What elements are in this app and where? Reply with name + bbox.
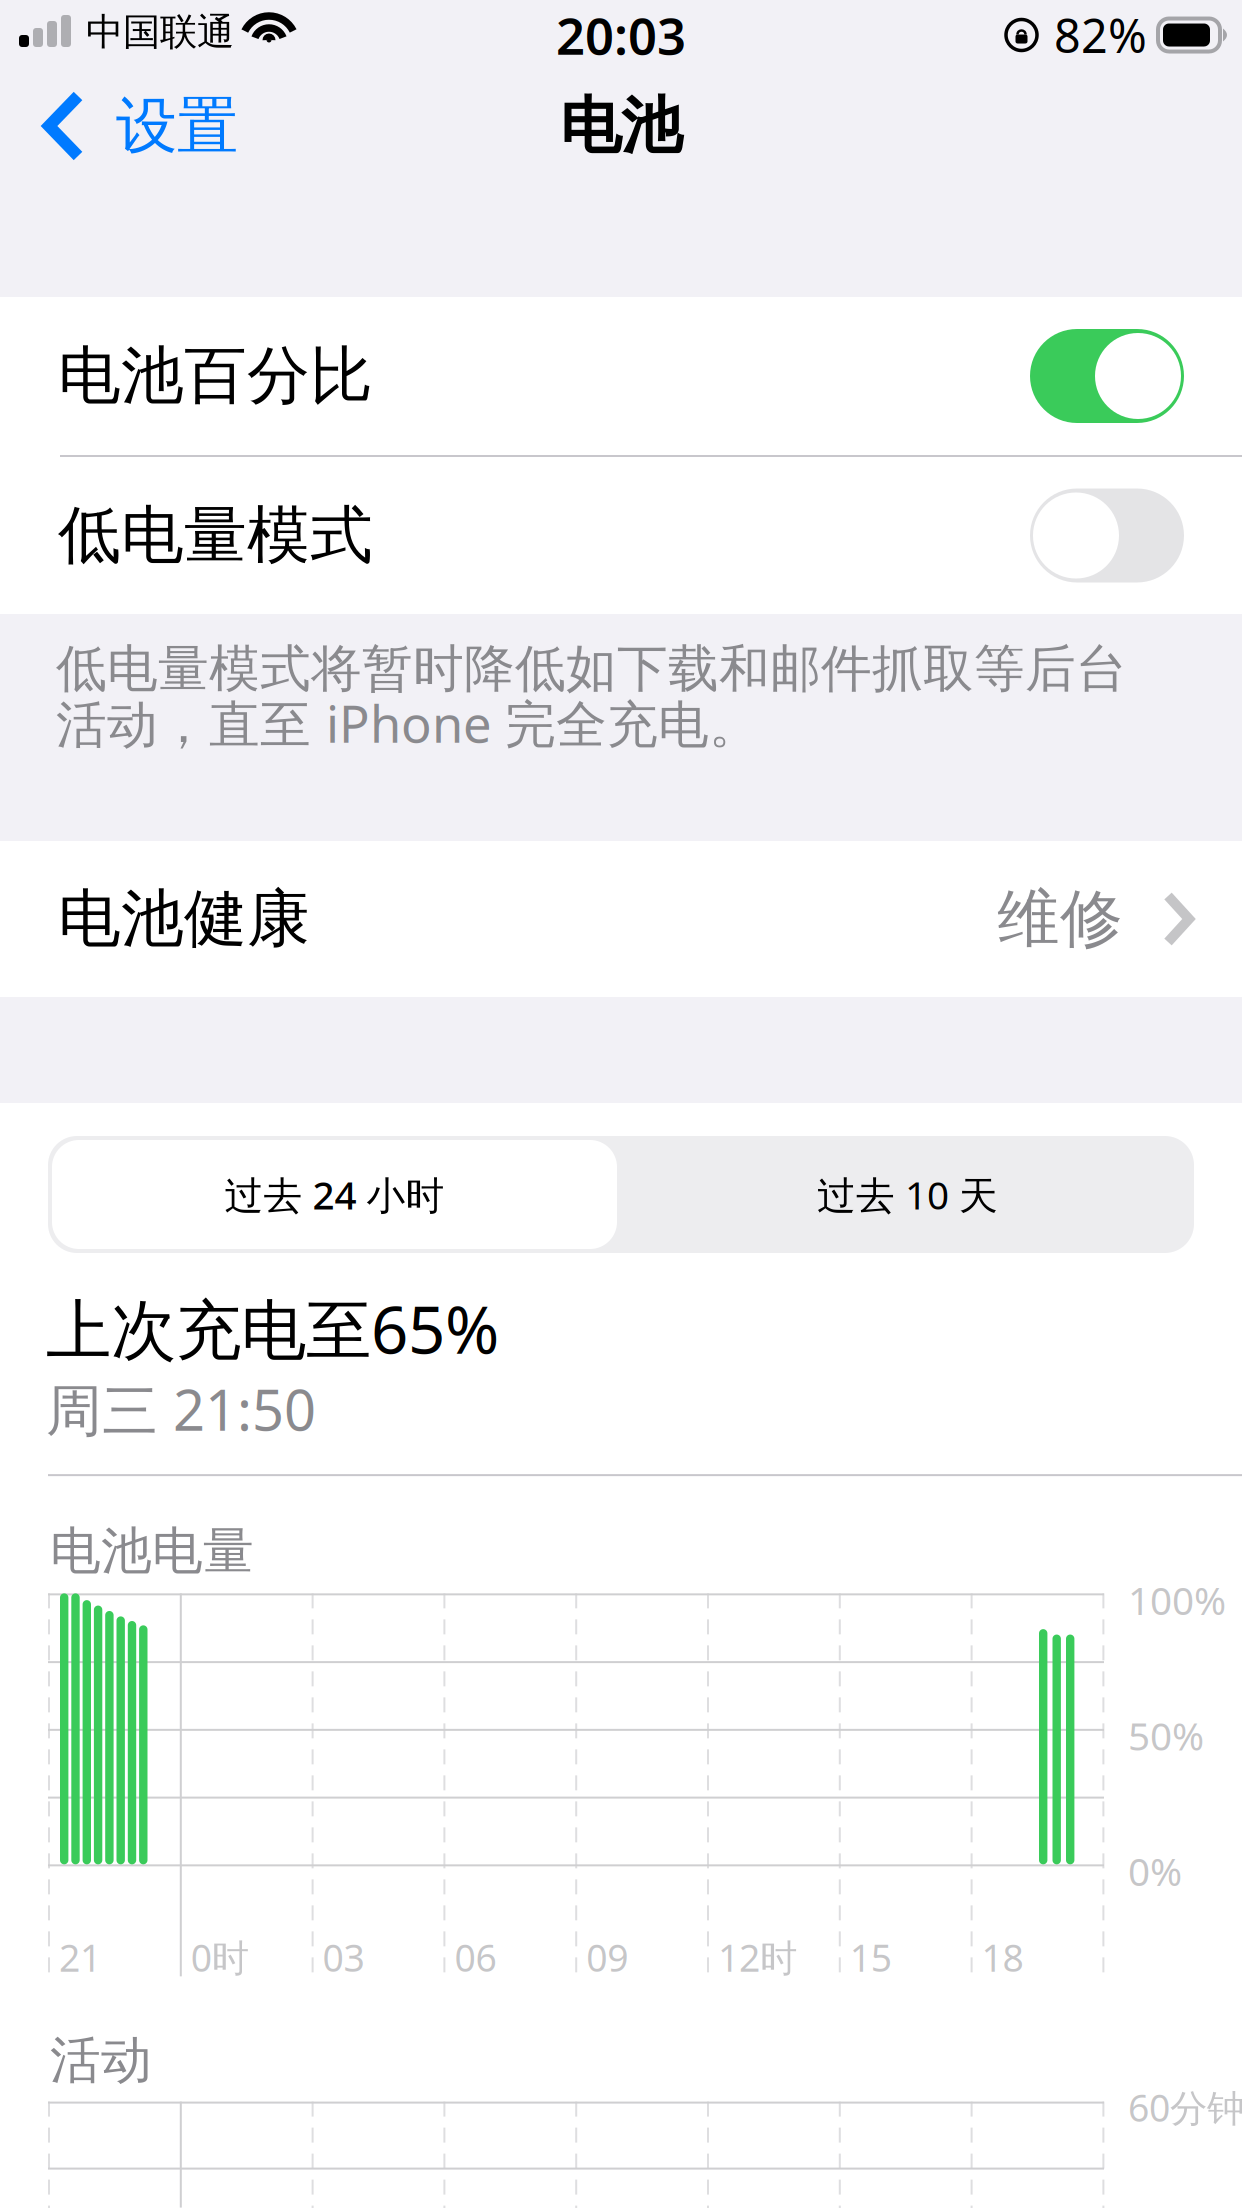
staticText: 0% [1128,1845,1182,1897]
staticText: 维修 [997,880,1123,957]
staticText: 50% [1128,1710,1204,1761]
staticText: 60分钟 [1128,2083,1242,2132]
staticText: 低电量模式 [58,497,373,574]
staticText: 03 [323,1932,365,1982]
staticText: 上次充电至65% [46,1285,499,1372]
button[interactable]: 电池健康 [0,841,1242,997]
staticText: 电池电量 [50,1520,254,1582]
button[interactable]: 电池百分比 [0,297,1242,455]
button[interactable]: 过去 10 天 [621,1136,1194,1253]
staticText: 06 [454,1932,496,1982]
staticText: 低电量模式将暂时降低如下载和邮件抓取等后台 [56,638,1127,700]
button[interactable]: 过去 24 小时 [48,1136,621,1253]
button[interactable]: 设置 [0,74,258,178]
staticText: 中国联通 [86,9,234,55]
staticText: 活动，直至 iPhone 完全充电。 [56,689,760,757]
staticText: 电池 [560,88,682,164]
staticText: 21 [59,1932,101,1982]
staticText: 过去 24 小时 [224,1169,444,1220]
staticText: 82% [1054,4,1147,66]
staticText: 09 [586,1932,628,1982]
staticText: 过去 10 天 [817,1169,998,1220]
staticText: 100% [1128,1574,1226,1626]
staticText: 电池百分比 [58,337,373,414]
staticText: 0时 [191,1932,249,1982]
staticText: 周三 21:50 [46,1372,316,1446]
staticText: 20:03 [556,1,686,69]
staticText: 15 [850,1932,892,1982]
button[interactable]: 低电量模式 [0,457,1242,614]
staticText: 设置 [116,88,238,164]
staticText: 电池健康 [58,880,310,957]
staticText: 活动 [50,2029,152,2092]
staticText: 12时 [718,1932,797,1982]
staticText: 18 [982,1932,1024,1982]
